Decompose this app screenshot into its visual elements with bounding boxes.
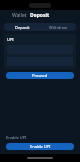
staticText: Proceed	[32, 73, 48, 78]
button[interactable]: Proceed	[6, 72, 74, 79]
button[interactable]: Enable UPI	[6, 143, 74, 150]
staticText: Withdraw	[49, 25, 68, 30]
staticText: Enable UPI	[6, 135, 27, 140]
button[interactable]: Withdraw	[40, 23, 76, 31]
button[interactable]: Deposit	[4, 23, 40, 31]
staticText: Deposit	[30, 12, 50, 19]
staticText: Deposit	[15, 25, 30, 30]
staticText: Wallet	[12, 12, 27, 19]
staticText: UPI	[7, 37, 14, 42]
staticText: Enable UPI	[30, 144, 51, 149]
